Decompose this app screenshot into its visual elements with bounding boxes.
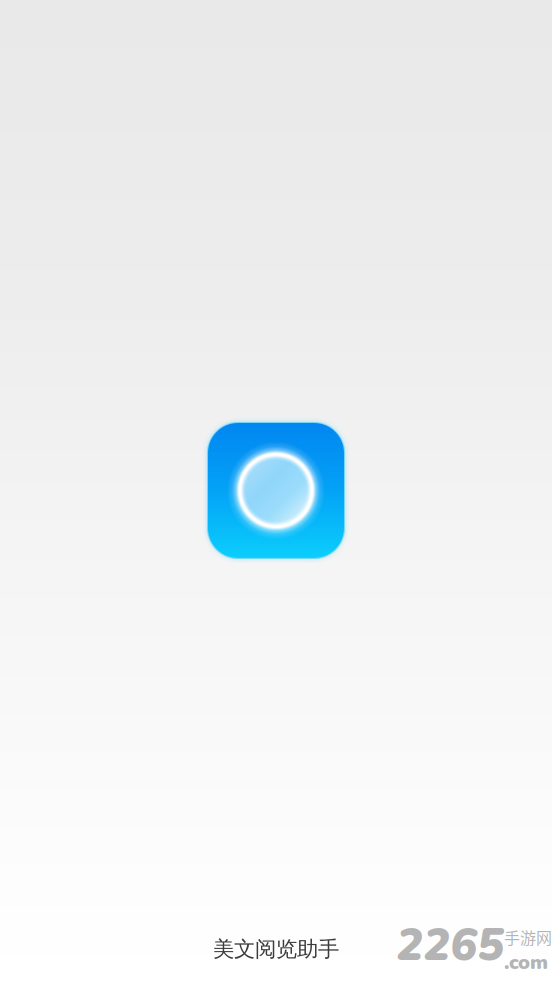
staticText: 2265 — [396, 914, 504, 976]
staticText: 手游网 — [504, 926, 552, 949]
staticText: 美文阅览助手 — [213, 936, 339, 962]
staticText: .com — [504, 949, 548, 976]
